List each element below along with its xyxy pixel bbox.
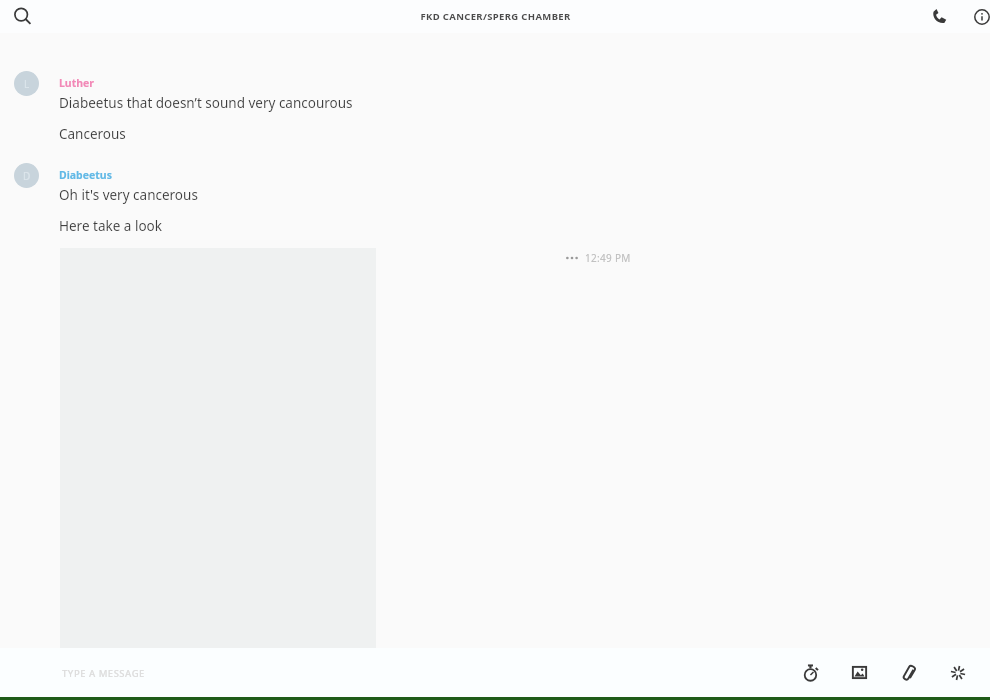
- staticText: L: [24, 77, 30, 91]
- button[interactable]: Search: [0, 0, 44, 33]
- staticText: Luther: [59, 76, 95, 90]
- button[interactable]: Attach: [884, 648, 933, 697]
- button[interactable]: More options: [560, 249, 584, 267]
- button[interactable]: Avatar L: [14, 71, 39, 96]
- staticText: Cancerous: [59, 125, 126, 143]
- staticText: TYPE A MESSAGE: [62, 667, 145, 680]
- staticText: 12:49 PM: [585, 251, 631, 265]
- button[interactable]: Info: [966, 0, 990, 33]
- button[interactable]: Photo: [835, 648, 884, 697]
- button[interactable]: Timer: [786, 648, 835, 697]
- button[interactable]: Shared image: [60, 248, 376, 681]
- staticText: Diabeetus: [59, 168, 112, 182]
- staticText: FKD CANCER/SPERG CHAMBER: [420, 10, 571, 23]
- button[interactable]: Effects: [933, 648, 982, 697]
- staticText: Diabeetus that doesn’t sound very cancou…: [59, 94, 353, 112]
- staticText: D: [23, 169, 31, 183]
- button[interactable]: Call: [920, 0, 958, 33]
- button[interactable]: Avatar D: [14, 163, 39, 188]
- staticText: Here take a look: [59, 217, 162, 235]
- staticText: Oh it's very cancerous: [59, 186, 198, 204]
